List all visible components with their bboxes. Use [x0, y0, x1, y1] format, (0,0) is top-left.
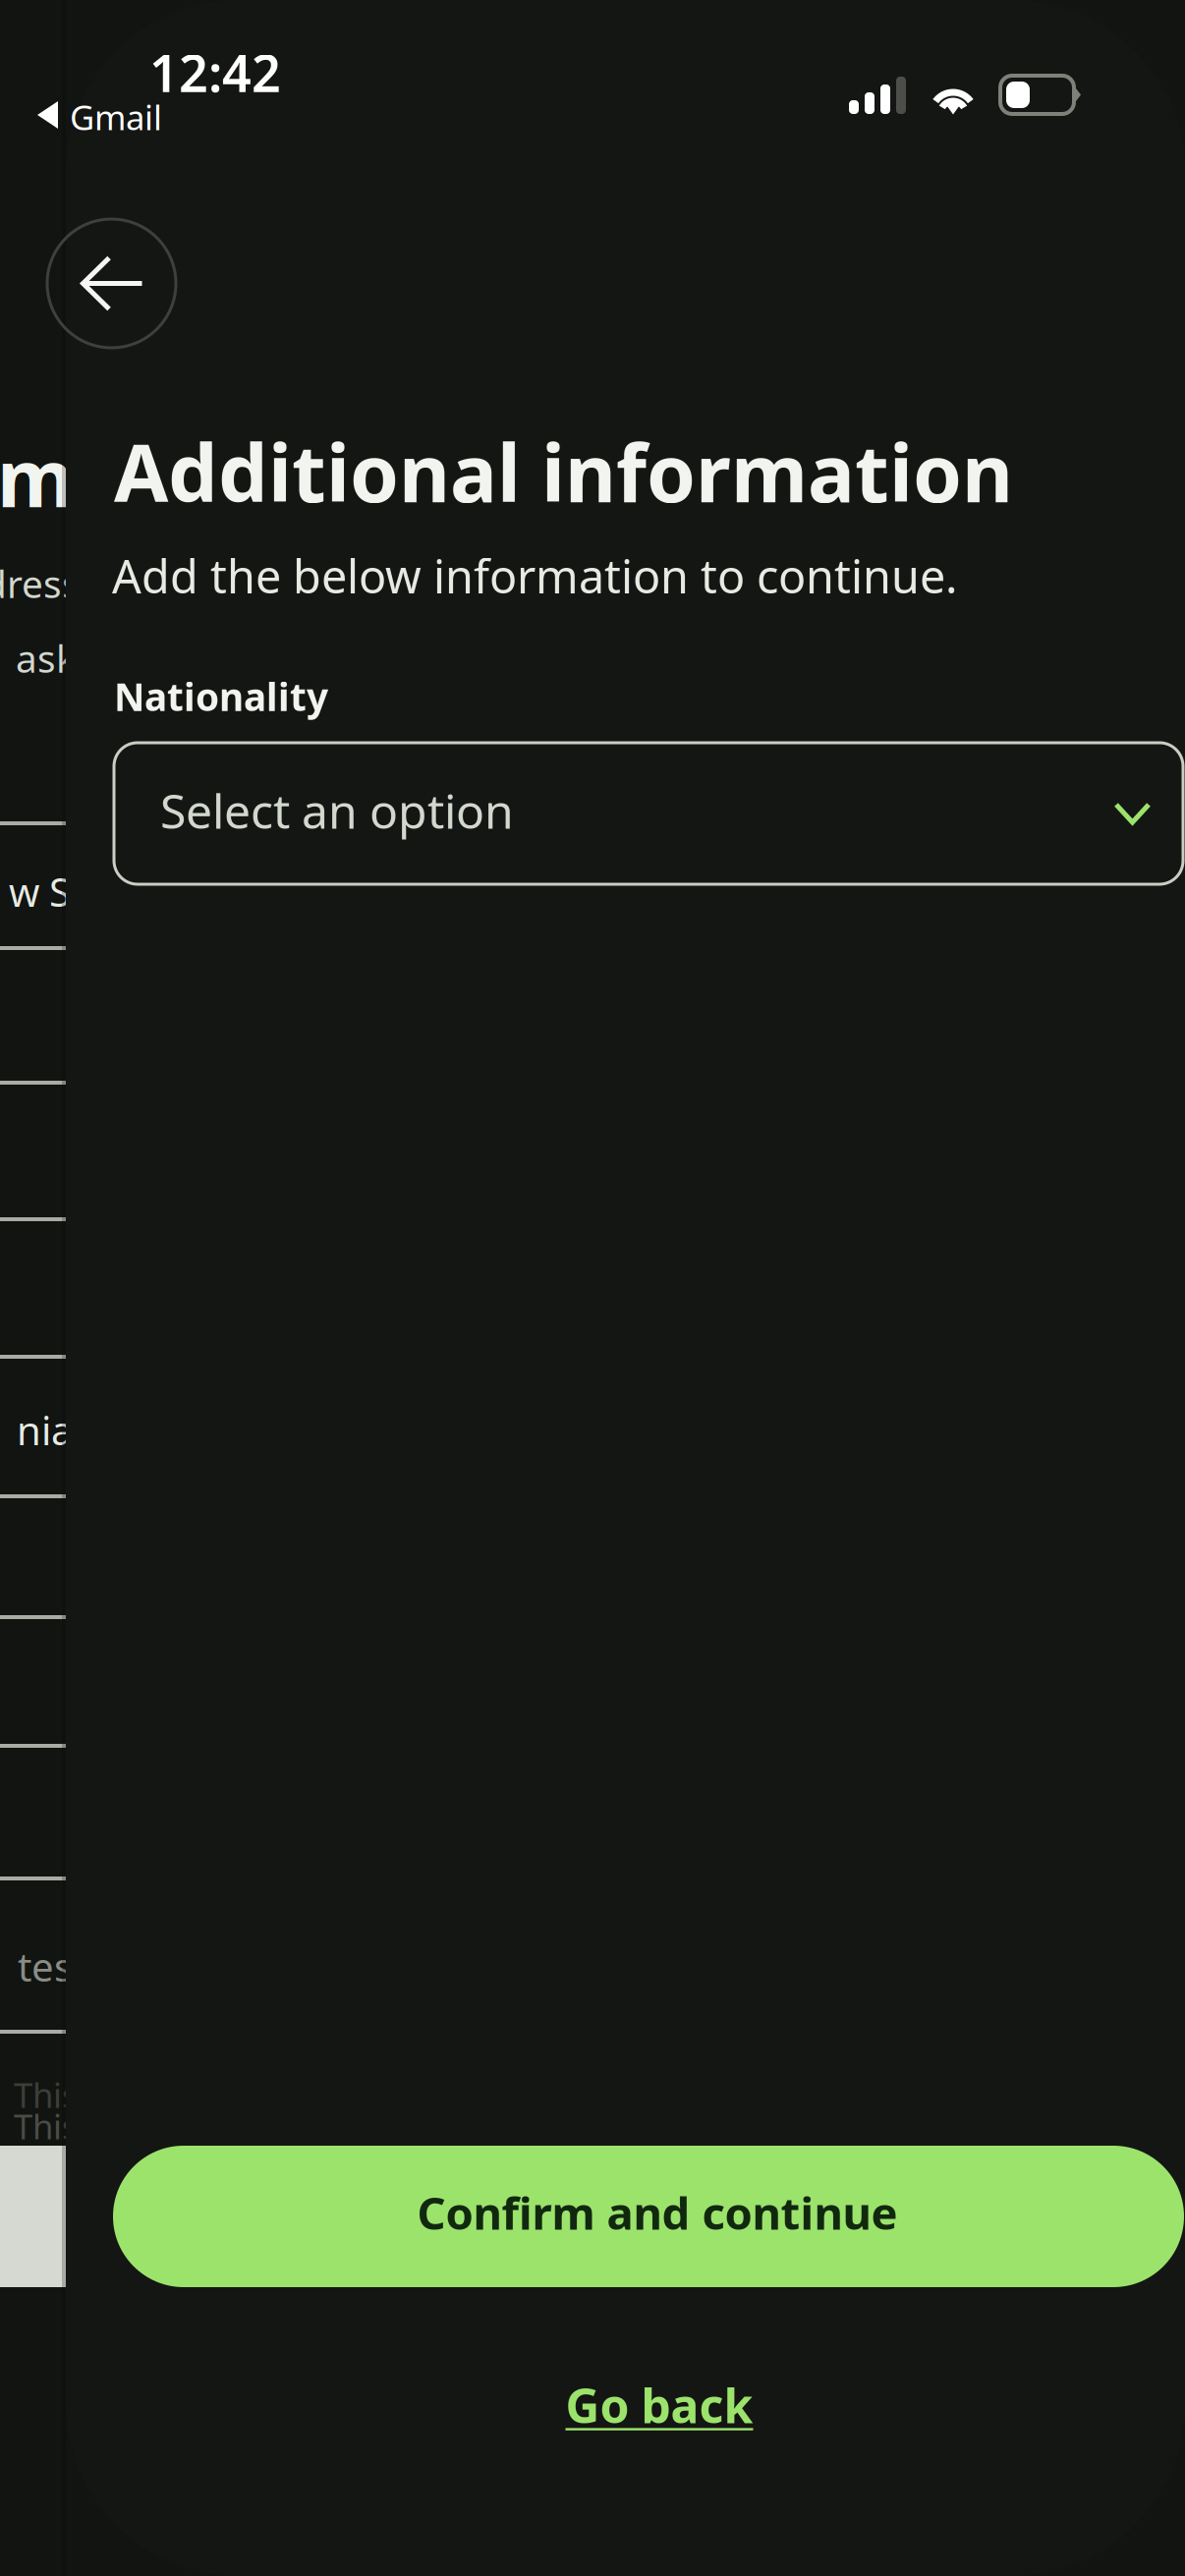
button[interactable]: Back	[47, 219, 176, 348]
staticText: Add the below information to continue.	[112, 545, 958, 606]
staticText: Confirm and continue	[417, 2183, 898, 2242]
staticText: This	[14, 2072, 79, 2117]
button[interactable]: Go back	[512, 2371, 807, 2439]
button[interactable]: Select an option	[114, 743, 1183, 884]
staticText: tes	[18, 1940, 73, 1993]
staticText: 12:42	[149, 38, 281, 106]
staticText: This	[14, 2103, 79, 2149]
staticText: Go back	[565, 2374, 753, 2436]
staticText: Select an option	[160, 779, 514, 842]
staticText: w S	[9, 866, 71, 918]
button[interactable]: Back to Gmail	[0, 0, 197, 157]
staticText: address	[0, 558, 81, 608]
staticText: am y	[0, 424, 140, 529]
button[interactable]: Confirm and continue	[113, 2146, 1184, 2287]
staticText: nia	[17, 1404, 73, 1456]
staticText: ask	[16, 633, 77, 683]
staticText: Additional information	[114, 420, 1013, 524]
staticText: Gmail	[70, 94, 162, 140]
staticText: Nationality	[114, 671, 328, 721]
